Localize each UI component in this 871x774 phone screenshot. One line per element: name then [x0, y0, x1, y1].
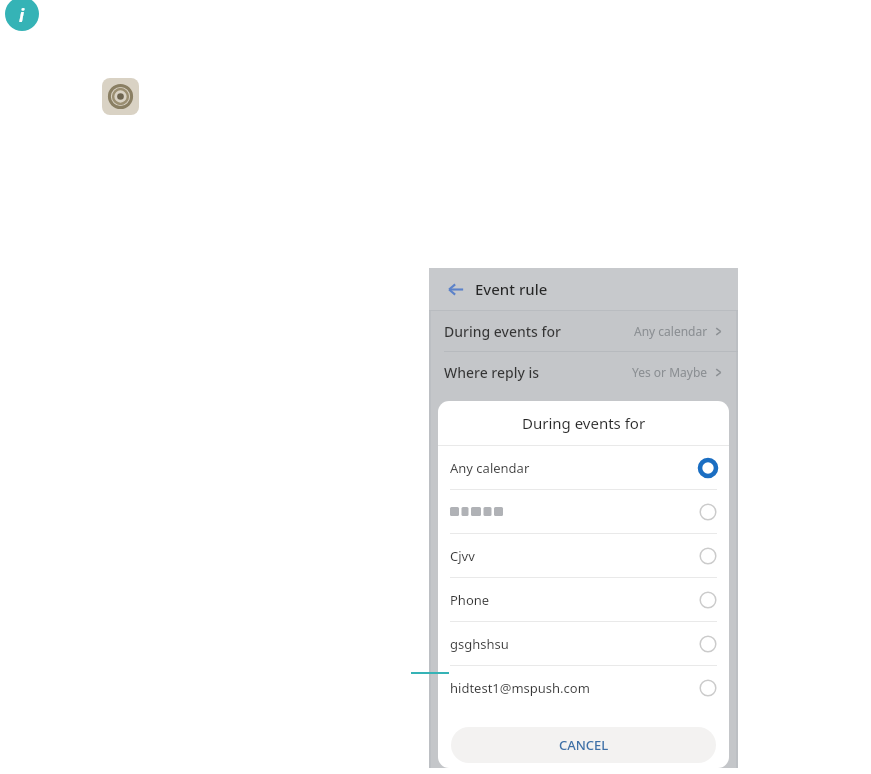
button[interactable]: During events for: [429, 311, 738, 352]
button[interactable]: CANCEL: [451, 727, 716, 763]
staticText: gsghshsu: [450, 635, 509, 653]
staticText: Any calendar: [450, 459, 530, 477]
staticText: During events for: [444, 322, 562, 341]
staticText: CANCEL: [559, 736, 609, 754]
button[interactable]: Information: [5, 0, 39, 31]
staticText: Any calendar: [634, 323, 708, 339]
staticText: Yes or Maybe: [632, 364, 708, 380]
button[interactable]: [438, 490, 729, 534]
button[interactable]: Any calendar: [438, 446, 729, 490]
staticText: Where reply is: [444, 363, 540, 382]
button[interactable]: gsghshsu: [438, 622, 729, 666]
staticText: Phone: [450, 591, 490, 609]
button[interactable]: Cjvv: [438, 534, 729, 578]
button[interactable]: Where reply is: [429, 352, 738, 392]
staticText: During events for: [522, 413, 646, 433]
button[interactable]: App icon: [102, 78, 139, 115]
staticText: Event rule: [475, 279, 548, 299]
button[interactable]: Phone: [438, 578, 729, 622]
staticText: i: [19, 4, 25, 27]
button[interactable]: hidtest1@mspush.com: [438, 666, 729, 709]
button[interactable]: Back: [441, 275, 469, 303]
staticText: hidtest1@mspush.com: [450, 679, 590, 697]
staticText: Cjvv: [450, 547, 475, 565]
